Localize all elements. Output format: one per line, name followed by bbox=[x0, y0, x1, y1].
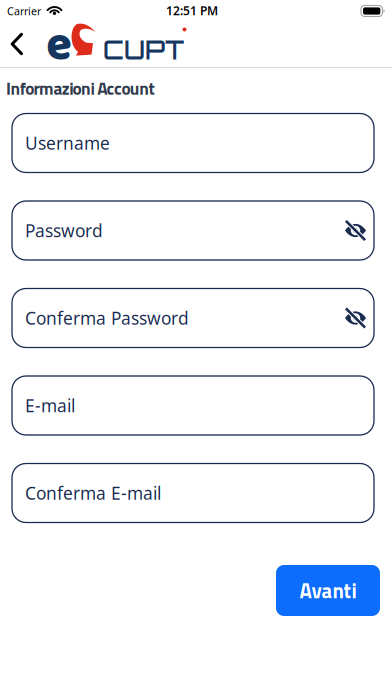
button[interactable]: Conferma Password bbox=[12, 288, 374, 347]
button[interactable]: Password bbox=[12, 201, 374, 260]
button[interactable]: Username bbox=[12, 113, 374, 172]
staticText: Conferma Password bbox=[25, 306, 189, 329]
button[interactable]: E-mail bbox=[12, 376, 374, 435]
button[interactable] bbox=[335, 210, 376, 251]
button[interactable] bbox=[335, 297, 376, 338]
staticText: CUPT bbox=[103, 34, 184, 66]
button[interactable]: Conferma E-mail bbox=[12, 463, 374, 522]
staticText: Conferma E-mail bbox=[25, 481, 161, 504]
button[interactable] bbox=[0, 0, 34, 60]
staticText: 12:51 PM bbox=[166, 2, 218, 18]
staticText: Informazioni Account bbox=[6, 75, 155, 101]
staticText: Carrier bbox=[7, 4, 41, 18]
staticText: Avanti bbox=[299, 575, 356, 606]
button[interactable]: Avanti bbox=[276, 565, 380, 616]
staticText: E-mail bbox=[25, 394, 75, 417]
staticText: Password bbox=[25, 219, 103, 242]
staticText: e bbox=[46, 9, 72, 83]
staticText: Username bbox=[25, 131, 110, 154]
